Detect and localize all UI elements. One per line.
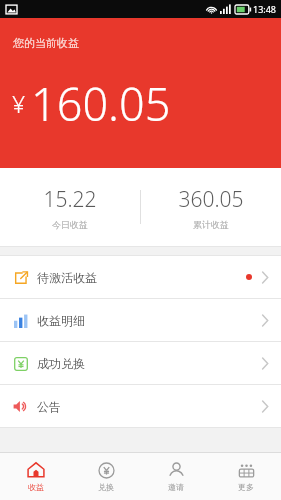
staticText: 160.05 — [31, 73, 171, 134]
button[interactable]: 收益明细 — [0, 299, 281, 341]
staticText: 成功兑换 — [37, 356, 85, 371]
staticText: 更多 — [238, 482, 254, 492]
staticText: 公告 — [37, 399, 61, 414]
staticText: 兑换 — [98, 482, 114, 492]
staticText: 收益明细 — [37, 313, 85, 328]
staticText: 待激活收益 — [37, 270, 97, 285]
button[interactable]: 待激活收益 — [0, 256, 281, 298]
staticText: ¥ — [12, 88, 26, 119]
staticText: 360.05 — [178, 185, 244, 214]
button[interactable]: 成功兑换 — [0, 342, 281, 384]
button[interactable]: 收益 — [0, 453, 71, 500]
staticText: 邀请 — [168, 482, 184, 492]
staticText: 15.22 — [43, 185, 97, 214]
staticText: 今日收益 — [52, 219, 88, 230]
staticText: 13:48 — [253, 3, 277, 15]
staticText: 收益 — [28, 482, 44, 492]
button[interactable]: 兑换 — [71, 453, 141, 500]
button[interactable]: 更多 — [211, 453, 281, 500]
staticText: 您的当前收益 — [13, 36, 79, 50]
button[interactable]: 邀请 — [141, 453, 211, 500]
staticText: 累计收益 — [193, 219, 229, 230]
button[interactable]: 公告 — [0, 385, 281, 427]
